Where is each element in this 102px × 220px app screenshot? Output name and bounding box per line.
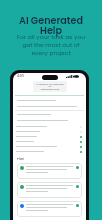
- button[interactable]: [13, 129, 86, 134]
- button[interactable]: [13, 124, 86, 129]
- button[interactable]: Task status: [17, 163, 82, 179]
- other: Task status: [20, 185, 24, 189]
- staticText: For all your task as you get the most ou…: [0, 33, 102, 57]
- staticText: AI Generated Help: [0, 14, 102, 37]
- button[interactable]: [13, 134, 86, 139]
- button[interactable]: [13, 139, 86, 144]
- staticText: 4:05: [17, 74, 24, 78]
- other: Task status: [20, 166, 24, 170]
- button[interactable]: [13, 144, 86, 149]
- button[interactable]: Task status: [17, 201, 82, 217]
- staticText: Plan: [17, 157, 24, 161]
- button[interactable]: [13, 149, 86, 154]
- button[interactable]: Change GTM meetings on passenger side: [35, 82, 65, 91]
- button[interactable]: Task status: [17, 182, 82, 198]
- staticText: Change GTM meetings on passenger side: [35, 82, 65, 91]
- other: Task status: [20, 204, 24, 208]
